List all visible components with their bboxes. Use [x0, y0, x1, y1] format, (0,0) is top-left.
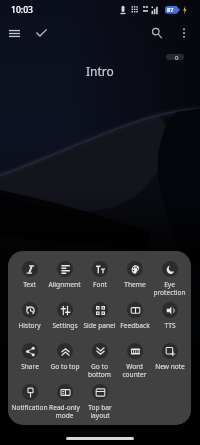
staticText: Read-only mode [49, 403, 80, 420]
button[interactable]: Done [29, 21, 53, 45]
staticText: Theme [124, 280, 146, 289]
button[interactable]: TTS [152, 302, 187, 330]
button[interactable]: Settings [47, 302, 82, 330]
staticText: 10:03 [11, 4, 34, 16]
button[interactable]: Search [145, 21, 169, 45]
button[interactable]: Notification [12, 384, 47, 412]
staticText: Alignment [48, 280, 81, 289]
staticText: Share [21, 362, 39, 371]
staticText: Settings [52, 321, 78, 330]
staticText: Top bar layout [88, 403, 112, 420]
staticText: New note [155, 362, 185, 371]
button[interactable]: Text [12, 261, 47, 289]
button[interactable]: Share [12, 343, 47, 371]
button[interactable]: Alignment [47, 261, 82, 289]
button[interactable]: Read-only mode [47, 384, 82, 420]
button[interactable]: Word counter [117, 343, 152, 379]
button[interactable]: Theme [117, 261, 152, 289]
button[interactable]: Go to bottom [82, 343, 117, 379]
staticText: Word counter [122, 362, 147, 379]
button[interactable]: Eye protection [152, 261, 187, 297]
staticText: Text [23, 280, 36, 289]
staticText: Intro [86, 63, 114, 78]
button[interactable]: Side panel [82, 302, 117, 330]
staticText: Feedback [120, 321, 150, 330]
staticText: Go to top [50, 362, 80, 371]
staticText: Font [93, 280, 107, 289]
button[interactable]: More options [172, 21, 196, 45]
button[interactable]: History [12, 302, 47, 330]
staticText: 87 [167, 6, 174, 14]
staticText: Side panel [83, 321, 116, 330]
staticText: Go to bottom [88, 362, 111, 379]
button[interactable]: Feedback [117, 302, 152, 330]
staticText: Notification [11, 403, 48, 412]
button[interactable]: Word count [166, 54, 184, 60]
button[interactable]: New note [152, 343, 187, 371]
staticText: Eye protection [153, 280, 186, 297]
button[interactable]: Top bar layout [82, 384, 117, 420]
button[interactable]: Menu [2, 21, 26, 45]
staticText: 0 [175, 54, 179, 62]
staticText: History [18, 321, 41, 330]
button[interactable]: Font [82, 261, 117, 289]
staticText: TTS [164, 321, 176, 330]
button[interactable]: Go to top [47, 343, 82, 371]
